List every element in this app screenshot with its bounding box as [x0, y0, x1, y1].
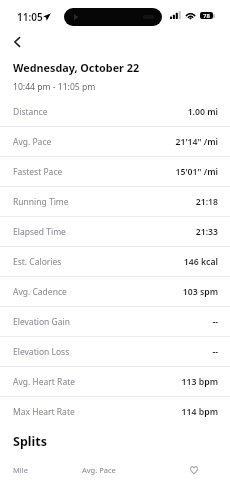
- staticText: Fastest Pace: [13, 166, 63, 178]
- staticText: Running Time: [13, 196, 69, 208]
- staticText: Wednesday, October 22: [13, 60, 140, 75]
- button[interactable]: Est. Calories: [0, 246, 230, 276]
- staticText: 21:33: [195, 226, 218, 238]
- staticText: Distance: [13, 106, 48, 118]
- button[interactable]: Elapsed Time: [0, 216, 230, 246]
- staticText: 114 bpm: [181, 406, 218, 418]
- staticText: Mile: [13, 465, 28, 475]
- button[interactable]: Avg. Cadence: [0, 276, 230, 306]
- button[interactable]: Avg. Pace: [0, 126, 230, 156]
- button[interactable]: Heart rate: [187, 463, 201, 477]
- staticText: --: [212, 346, 218, 358]
- button[interactable]: Distance: [0, 96, 230, 126]
- button[interactable]: Back: [8, 33, 26, 51]
- staticText: Splits: [13, 433, 47, 450]
- button[interactable]: Fastest Pace: [0, 156, 230, 186]
- button[interactable]: Elevation Gain: [0, 306, 230, 336]
- staticText: 113 bpm: [181, 376, 218, 388]
- staticText: Est. Calories: [13, 256, 62, 268]
- staticText: Elevation Gain: [13, 316, 70, 328]
- staticText: --: [212, 316, 218, 328]
- staticText: 146 kcal: [183, 256, 218, 268]
- button[interactable]: Max Heart Rate: [0, 396, 230, 426]
- staticText: Avg. Heart Rate: [13, 376, 76, 388]
- staticText: 1.00 mi: [187, 106, 218, 118]
- staticText: Avg. Cadence: [13, 286, 67, 298]
- staticText: 15'01" /mi: [175, 166, 218, 178]
- button[interactable]: Avg. Heart Rate: [0, 366, 230, 396]
- staticText: Avg. Pace: [82, 465, 116, 475]
- button[interactable]: Running Time: [0, 186, 230, 216]
- staticText: Max Heart Rate: [13, 406, 75, 418]
- staticText: 21'14" /mi: [175, 136, 218, 148]
- staticText: 21:18: [195, 196, 218, 208]
- button[interactable]: Elevation Loss: [0, 336, 230, 366]
- staticText: 103 spm: [182, 286, 218, 298]
- staticText: Elapsed Time: [13, 226, 66, 238]
- staticText: Avg. Pace: [13, 136, 52, 148]
- staticText: 11:05: [17, 10, 43, 24]
- staticText: Elevation Loss: [13, 346, 70, 358]
- staticText: 78: [203, 12, 210, 19]
- staticText: 10:44 pm - 11:05 pm: [13, 81, 96, 93]
